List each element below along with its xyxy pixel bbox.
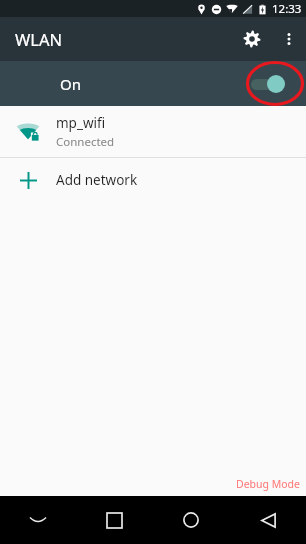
button[interactable]: More options	[272, 22, 306, 56]
staticText: 12:33	[272, 1, 302, 17]
button[interactable]: Add network	[0, 158, 306, 202]
button[interactable]: Home	[152, 496, 230, 544]
button[interactable]: mp_wifi	[0, 106, 306, 157]
staticText: On	[60, 74, 81, 94]
staticText: mp_wifi	[56, 114, 106, 132]
staticText: WLAN	[15, 28, 63, 50]
button[interactable]: Recent apps	[76, 496, 152, 544]
button[interactable]: Back	[230, 496, 306, 544]
staticText: Debug Mode	[236, 477, 300, 491]
button[interactable]: On	[0, 61, 306, 106]
staticText: Connected	[56, 134, 115, 150]
button[interactable]: Hide navigation	[0, 496, 76, 544]
button[interactable]: Settings	[232, 19, 272, 59]
staticText: Add network	[56, 171, 138, 189]
